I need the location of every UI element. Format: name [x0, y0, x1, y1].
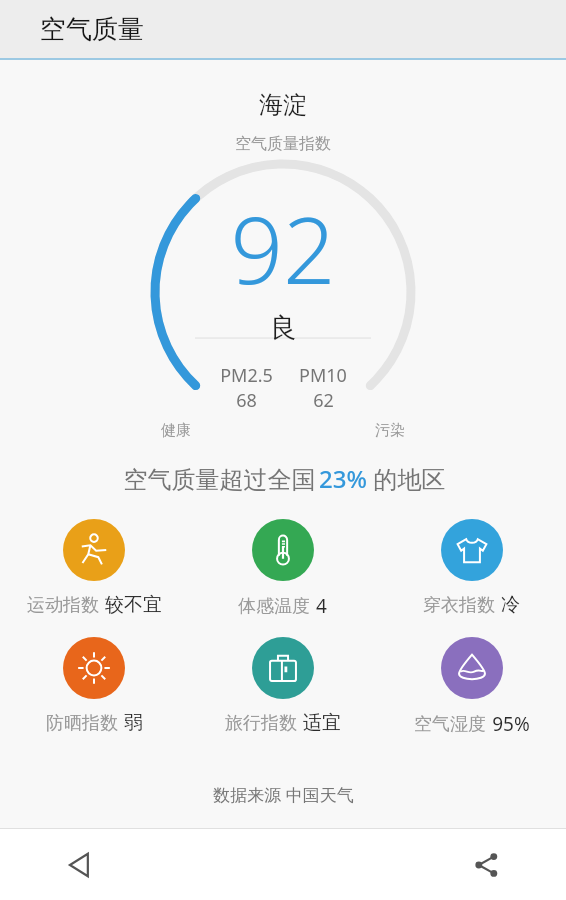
staticText: 健康	[161, 421, 191, 440]
staticText: 体感温度	[238, 595, 310, 618]
staticText: 23%	[319, 462, 367, 495]
staticText: 弱	[124, 711, 143, 735]
staticText: 海淀	[259, 90, 307, 120]
staticText: 的地区	[367, 462, 446, 495]
staticText: 防晒指数	[46, 712, 118, 735]
staticText: 旅行指数	[225, 712, 297, 735]
staticText: 运动指数	[27, 594, 99, 617]
staticText: 空气质量	[40, 13, 144, 46]
staticText: 空气湿度	[414, 713, 486, 736]
staticText: 95%	[492, 711, 530, 737]
staticText: 62	[313, 388, 334, 413]
staticText: 良	[270, 311, 297, 345]
button[interactable]: Back	[0, 829, 160, 900]
staticText: 穿衣指数	[423, 594, 495, 617]
button[interactable]: 穿衣指数	[377, 517, 566, 619]
staticText: 68	[236, 388, 257, 413]
staticText: 空气质量指数	[235, 134, 331, 154]
staticText: 空气质量超过全国	[120, 462, 319, 495]
staticText: 4	[316, 593, 327, 619]
button[interactable]: Share	[406, 829, 566, 900]
button[interactable]: 旅行指数	[188, 635, 377, 737]
button[interactable]: 运动指数	[0, 517, 188, 619]
staticText: 数据来源 中国天气	[213, 783, 354, 806]
staticText: PM2.5	[220, 363, 273, 388]
staticText: 污染	[375, 421, 405, 440]
button[interactable]: 空气湿度	[377, 635, 566, 739]
button[interactable]: 体感温度	[188, 517, 377, 621]
staticText: 92	[230, 186, 336, 311]
staticText: PM10	[299, 363, 347, 388]
staticText: 适宜	[303, 711, 341, 735]
staticText: 较不宜	[105, 593, 162, 617]
staticText: 冷	[501, 593, 520, 617]
button[interactable]: 防晒指数	[0, 635, 188, 737]
